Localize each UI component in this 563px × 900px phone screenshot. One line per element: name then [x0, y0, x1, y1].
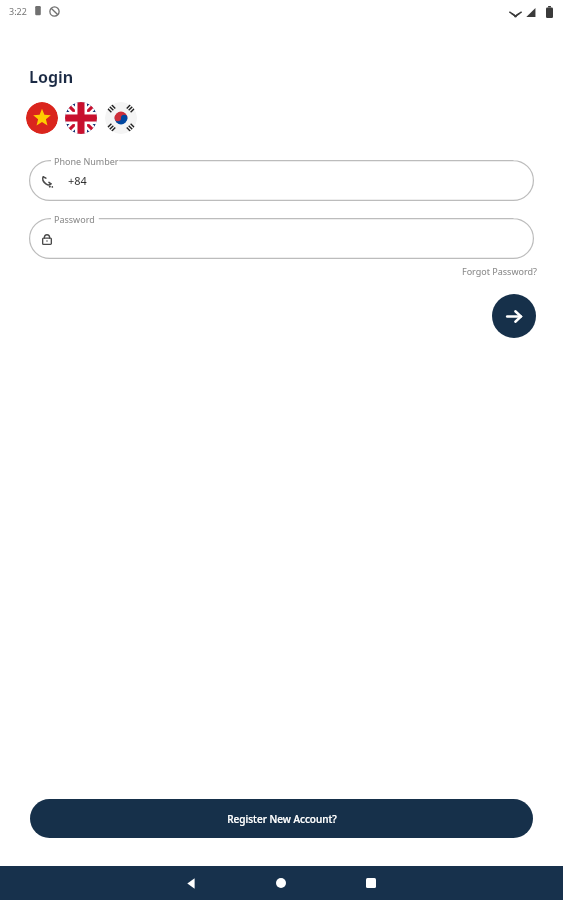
- button[interactable]: English language: [65, 102, 97, 134]
- button[interactable]: Korean language: [105, 102, 137, 134]
- staticText: Password: [54, 213, 95, 225]
- button[interactable]: Home: [267, 866, 295, 900]
- staticText: Phone Number: [54, 155, 119, 167]
- staticText: 3:22: [9, 5, 27, 17]
- button[interactable]: Register New Account?: [30, 799, 533, 838]
- staticText: Register New Account?: [227, 812, 337, 826]
- staticText: Login: [29, 66, 74, 88]
- button[interactable]: Recent apps: [357, 866, 385, 900]
- button[interactable]: Back: [177, 866, 205, 900]
- button[interactable]: Password field: [29, 218, 534, 259]
- button[interactable]: Login: [492, 294, 536, 338]
- staticText: +84: [68, 173, 87, 188]
- button[interactable]: Phone number field: [29, 160, 534, 201]
- button[interactable]: Forgot Password?: [462, 265, 537, 277]
- button[interactable]: Vietnamese language: [26, 102, 58, 134]
